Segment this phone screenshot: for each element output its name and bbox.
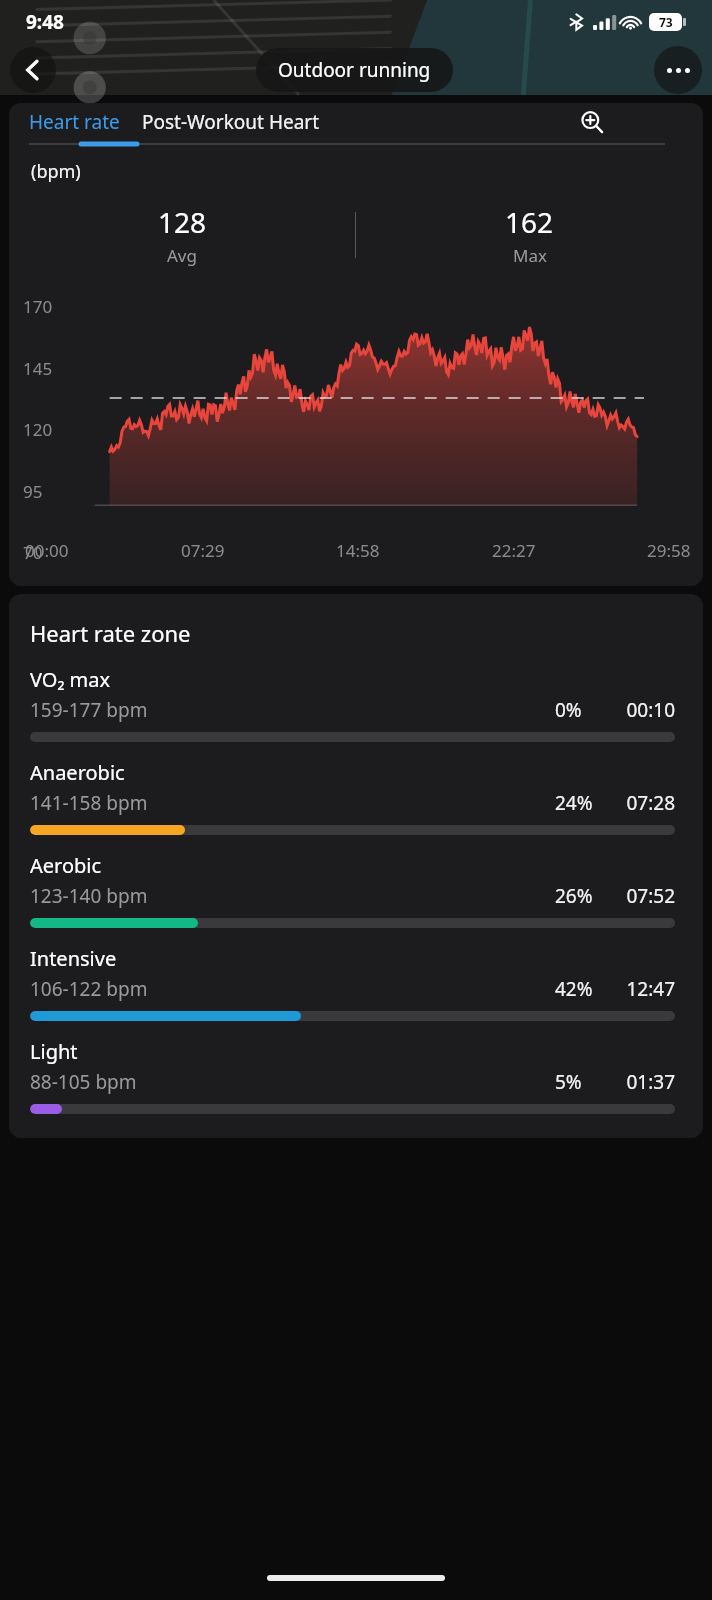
staticText: Aerobic bbox=[30, 852, 102, 879]
staticText: Avg bbox=[167, 244, 197, 267]
staticText: 170 bbox=[23, 295, 53, 318]
button[interactable]: Outdoor running bbox=[256, 48, 453, 92]
staticText: 00:10 bbox=[613, 697, 675, 723]
staticText: Max bbox=[513, 244, 547, 267]
staticText: 9:48 bbox=[26, 9, 64, 35]
staticText: 128 bbox=[158, 203, 207, 241]
staticText: 07:29 bbox=[181, 539, 225, 562]
staticText: 88-105 bpm bbox=[30, 1069, 137, 1095]
staticText: Outdoor running bbox=[278, 57, 431, 83]
button[interactable]: Light bbox=[30, 1038, 675, 1114]
button[interactable]: Heart rate bbox=[29, 109, 120, 135]
button[interactable]: Post-Workout Heart bbox=[142, 109, 320, 135]
staticText: Heart rate bbox=[29, 109, 120, 135]
staticText: Light bbox=[30, 1038, 78, 1065]
staticText: 07:52 bbox=[613, 883, 675, 909]
staticText: 24% bbox=[555, 790, 601, 816]
staticText: 145 bbox=[23, 357, 53, 380]
staticText: Post-Workout Heart bbox=[142, 109, 320, 135]
staticText: 00:00 bbox=[25, 539, 69, 562]
staticText: 01:37 bbox=[613, 1069, 675, 1095]
button[interactable]: More options bbox=[654, 46, 702, 94]
staticText: 106-122 bpm bbox=[30, 976, 148, 1002]
button[interactable]: VO₂ max bbox=[30, 666, 675, 742]
staticText: 26% bbox=[555, 883, 601, 909]
staticText: Heart rate zone bbox=[30, 618, 191, 648]
staticText: Intensive bbox=[30, 945, 117, 972]
staticText: 120 bbox=[23, 418, 53, 441]
button[interactable]: Zoom in bbox=[576, 106, 608, 138]
staticText: 42% bbox=[555, 976, 601, 1002]
staticText: 0% bbox=[555, 697, 601, 723]
staticText: VO₂ max bbox=[30, 666, 111, 693]
staticText: 70 bbox=[23, 541, 43, 564]
button[interactable]: Intensive bbox=[30, 945, 675, 1021]
staticText: 123-140 bpm bbox=[30, 883, 148, 909]
staticText: 12:47 bbox=[613, 976, 675, 1002]
button[interactable]: Back bbox=[10, 47, 56, 93]
staticText: (bpm) bbox=[31, 159, 81, 184]
staticText: 29:58 bbox=[647, 539, 691, 562]
staticText: 07:28 bbox=[613, 790, 675, 816]
staticText: 162 bbox=[505, 203, 554, 241]
staticText: 22:27 bbox=[492, 539, 536, 562]
staticText: 73 bbox=[659, 14, 673, 30]
button[interactable]: Anaerobic bbox=[30, 759, 675, 835]
staticText: Anaerobic bbox=[30, 759, 125, 786]
staticText: 141-158 bpm bbox=[30, 790, 148, 816]
staticText: 95 bbox=[23, 480, 43, 503]
staticText: 159-177 bpm bbox=[30, 697, 148, 723]
staticText: 5% bbox=[555, 1069, 601, 1095]
staticText: 14:58 bbox=[336, 539, 380, 562]
button[interactable]: Aerobic bbox=[30, 852, 675, 928]
